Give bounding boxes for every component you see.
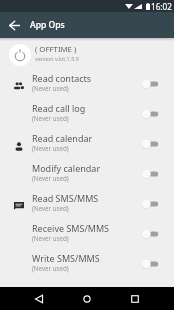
staticText: Modify calendar: [32, 162, 101, 174]
staticText: (Never used): [32, 264, 69, 272]
staticText: (Never used): [32, 84, 69, 92]
button[interactable]: Back: [15, 287, 63, 310]
staticText: (Never used): [32, 204, 69, 212]
staticText: (Never used): [32, 144, 69, 152]
button[interactable]: Read calendar: [0, 127, 174, 157]
button[interactable]: Modify calendar: [0, 157, 174, 187]
button[interactable]: Toggle Receive SMS/MMS: [134, 217, 166, 247]
staticText: version v.kit.1.5.9: [35, 55, 79, 62]
button[interactable]: Toggle Read call log: [134, 97, 166, 127]
staticText: (Never used): [32, 174, 69, 182]
button[interactable]: Toggle Read SMS/MMS: [134, 187, 166, 217]
button[interactable]: Toggle Write SMS/MMS: [134, 247, 166, 277]
button[interactable]: Receive SMS/MMS: [0, 217, 174, 247]
button[interactable]: Home: [63, 287, 111, 310]
staticText: App Ops: [30, 19, 65, 31]
staticText: Read SMS/MMS: [32, 192, 99, 204]
staticText: Read calendar: [32, 132, 93, 144]
button[interactable]: Back: [0, 12, 28, 38]
staticText: ( OFFTIME ): [35, 44, 77, 55]
staticText: (Never used): [32, 114, 69, 122]
staticText: Write SMS/MMS: [32, 252, 100, 264]
button[interactable]: Recents: [111, 287, 159, 310]
button[interactable]: Write SMS/MMS: [0, 247, 174, 277]
button[interactable]: Toggle Modify calendar: [134, 157, 166, 187]
button[interactable]: Read contacts: [0, 67, 174, 97]
button[interactable]: Read SMS/MMS: [0, 187, 174, 217]
staticText: Read call log: [32, 102, 86, 114]
staticText: Receive SMS/MMS: [32, 222, 110, 234]
staticText: 16:02: [151, 1, 172, 12]
button[interactable]: Toggle Read contacts: [134, 67, 166, 97]
button[interactable]: Toggle Read calendar: [134, 127, 166, 157]
button[interactable]: Power toggle: [9, 44, 31, 66]
staticText: (Never used): [32, 234, 69, 242]
button[interactable]: Read call log: [0, 97, 174, 127]
staticText: Read contacts: [32, 72, 92, 84]
